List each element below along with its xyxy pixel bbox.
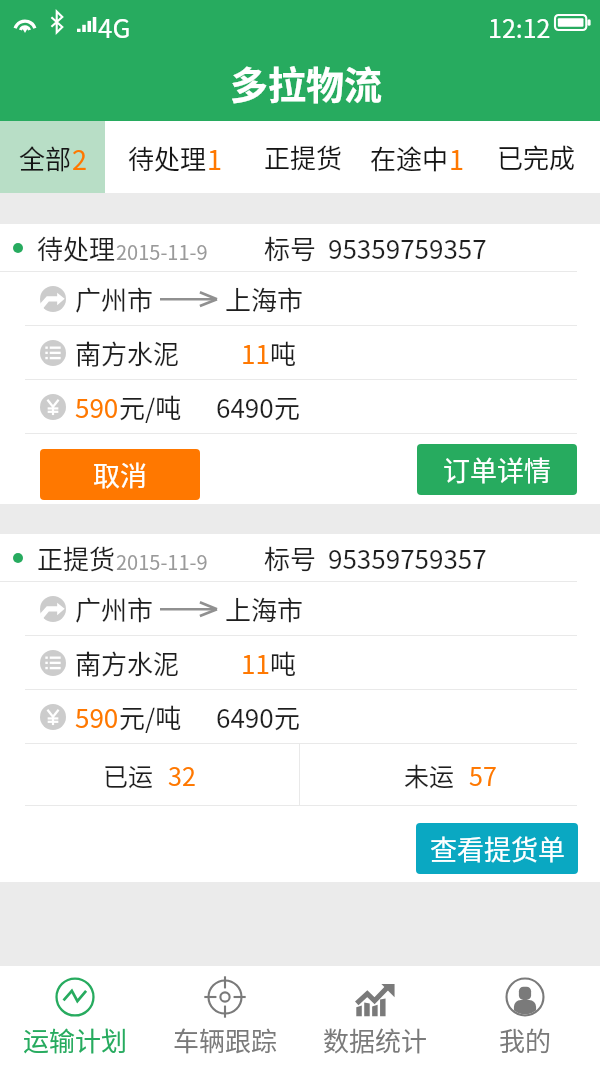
staticText: 全部 [19,139,72,177]
staticText: 我的 [499,1021,552,1059]
staticText: 6490 [216,388,274,426]
staticText: 12:12 [488,9,551,45]
staticText: 广州市 [75,590,154,628]
button[interactable]: Statistics [300,966,450,1067]
staticText: 待处理 [37,229,116,267]
staticText: 正提货 [264,138,343,176]
staticText: 南方水泥 [75,334,180,372]
button[interactable]: 待处理 [105,121,244,193]
staticText: 元/吨 [119,698,182,736]
button[interactable]: 取消 [40,449,200,500]
staticText: 32 [168,757,196,793]
staticText: 元/吨 [119,388,182,426]
staticText: 数据统计 [323,1021,428,1059]
staticText: 取消 [93,455,147,494]
button[interactable]: 未运 [300,744,600,805]
staticText: 590 [75,698,119,736]
staticText: 吨 [270,644,297,682]
button[interactable]: Transport plan [0,966,150,1067]
staticText: 南方水泥 [75,644,180,682]
staticText: 已完成 [497,138,576,176]
button[interactable]: 订单详情 [417,444,577,495]
staticText: 57 [469,757,497,793]
staticText: 11 [241,644,270,682]
staticText: 吨 [270,334,297,372]
staticText: 95359759357 [328,229,487,267]
staticText: 2015-11-9 [116,237,208,266]
staticText: 2015-11-9 [116,547,208,576]
staticText: 11 [241,334,270,372]
staticText: 正提货 [37,539,116,577]
staticText: 广州市 [75,280,154,318]
staticText: 车辆跟踪 [173,1021,278,1059]
button[interactable]: 在途中 [362,121,472,193]
staticText: 1 [207,139,222,178]
button[interactable]: 全部 [0,121,105,193]
staticText: 元 [274,698,301,736]
staticText: 在途中 [370,139,449,177]
staticText: 订单详情 [443,450,551,489]
staticText: 元 [274,388,301,426]
button[interactable]: 正提货 [244,121,362,193]
staticText: 未运 [404,757,455,793]
staticText: 已运 [103,757,154,793]
staticText: 运输计划 [23,1021,128,1059]
button[interactable]: 已运 [0,744,299,805]
staticText: 查看提货单 [430,829,565,868]
staticText: 1 [449,139,464,178]
button[interactable]: Profile [450,966,600,1067]
staticText: 标号 [264,229,317,267]
staticText: 标号 [264,539,317,577]
staticText: 4G [98,8,131,46]
staticText: 多拉物流 [230,55,383,110]
staticText: 上海市 [225,280,304,318]
staticText: 上海市 [225,590,304,628]
button[interactable]: 已完成 [472,121,600,193]
button[interactable]: Vehicle tracking [150,966,300,1067]
staticText: 590 [75,388,119,426]
staticText: 待处理 [128,139,207,177]
staticText: 95359759357 [328,539,487,577]
staticText: 2 [72,139,87,178]
staticText: 6490 [216,698,274,736]
button[interactable]: 查看提货单 [416,823,578,874]
